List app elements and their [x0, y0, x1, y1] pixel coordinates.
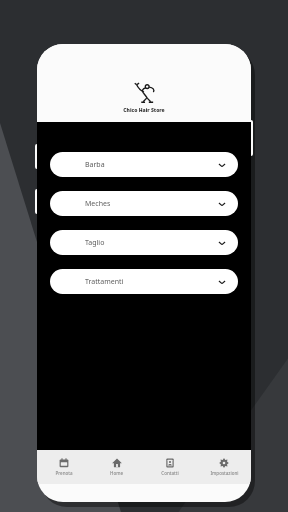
staticText: Contatti — [161, 470, 179, 476]
staticText: Home — [110, 470, 123, 476]
button[interactable]: Meches — [50, 191, 238, 216]
staticText: Trattamenti — [85, 277, 124, 287]
staticText: Meches — [85, 199, 111, 209]
staticText: Impostazioni — [210, 470, 239, 476]
staticText: Taglio — [85, 238, 105, 248]
staticText: Prenota — [55, 470, 73, 476]
button[interactable]: Home — [90, 454, 143, 480]
staticText: Chico Hair Store — [123, 107, 165, 114]
button[interactable]: Taglio — [50, 230, 238, 255]
button[interactable]: Trattamenti — [50, 269, 238, 294]
button[interactable]: Prenota — [37, 454, 90, 480]
button[interactable]: Barba — [50, 152, 238, 177]
button[interactable]: Impostazioni — [197, 454, 251, 480]
staticText: Barba — [85, 160, 105, 170]
button[interactable]: Contatti — [143, 454, 197, 480]
